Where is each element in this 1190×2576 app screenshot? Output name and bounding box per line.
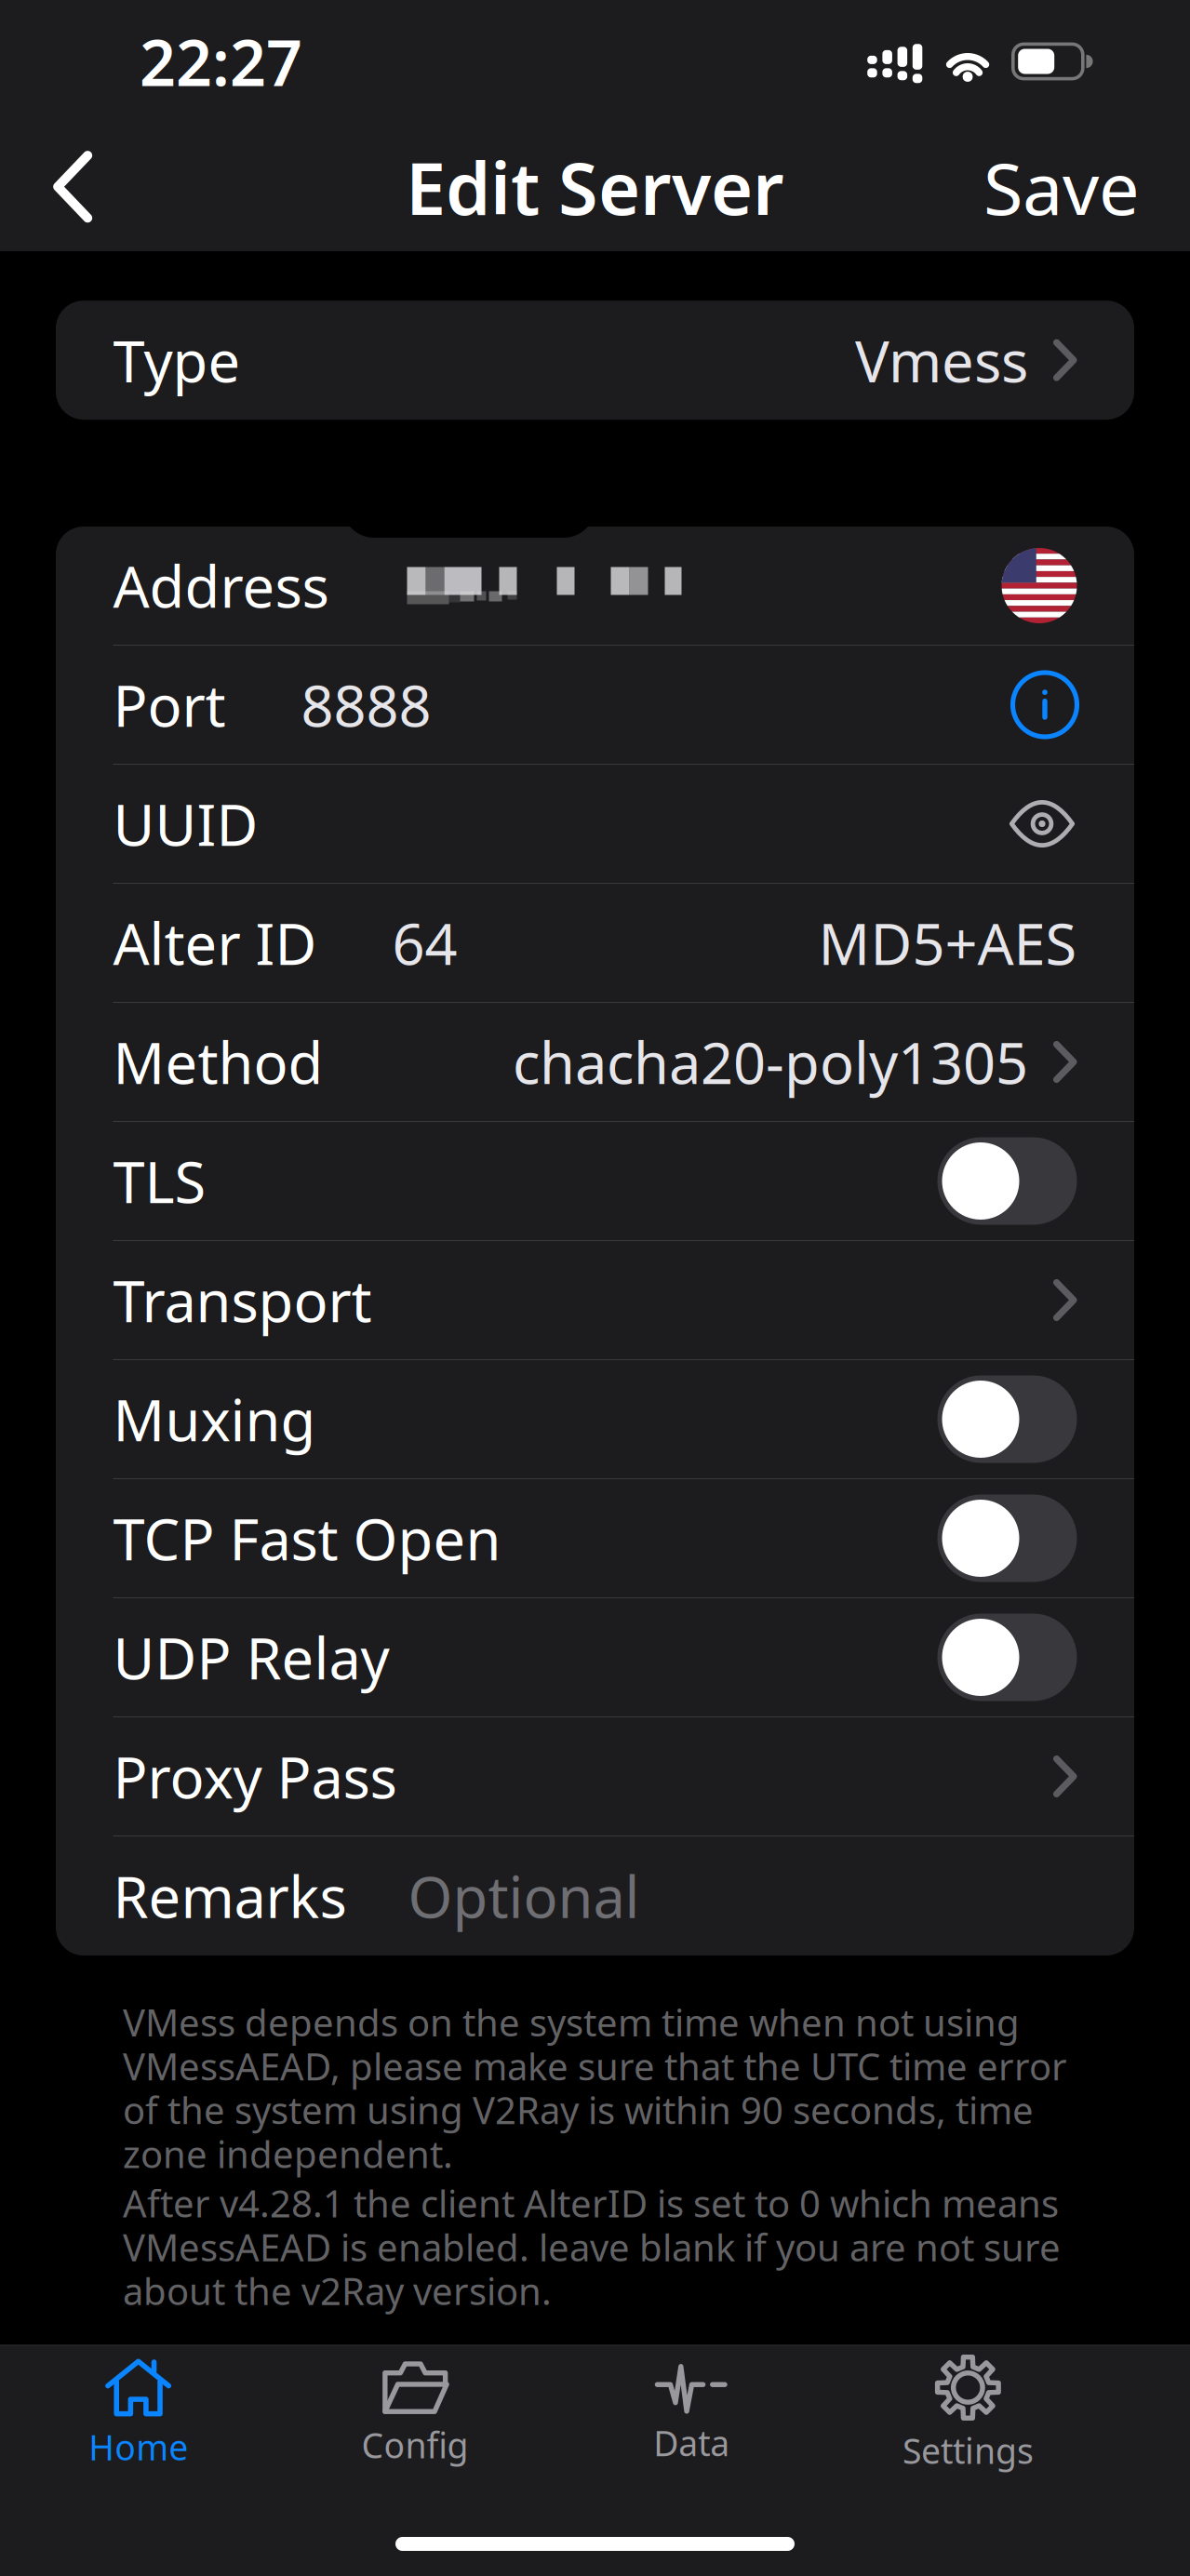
staticText: UDP Relay bbox=[113, 1619, 389, 1695]
staticText: 64 bbox=[392, 905, 457, 981]
button[interactable]: Settings bbox=[830, 2346, 1106, 2483]
staticText: Optional bbox=[408, 1858, 640, 1934]
staticText: 22:27 bbox=[140, 19, 302, 103]
staticText: Save bbox=[983, 139, 1140, 235]
staticText: VMess depends on the system time when no… bbox=[123, 1997, 1067, 2178]
staticText: UUID bbox=[113, 786, 258, 862]
button[interactable]: Data bbox=[553, 2346, 830, 2483]
button[interactable]: Save bbox=[933, 123, 1190, 251]
staticText: MD5+AES bbox=[818, 905, 1077, 981]
staticText: TLS bbox=[113, 1143, 206, 1219]
button[interactable]: Transport bbox=[56, 1241, 1134, 1360]
staticText: Transport bbox=[113, 1262, 372, 1338]
staticText: Port bbox=[113, 667, 226, 743]
button[interactable]: Config bbox=[277, 2346, 553, 2483]
staticText: After v4.28.1 the client AlterID is set … bbox=[123, 2178, 1061, 2315]
staticText: Edit Server bbox=[406, 139, 784, 235]
button[interactable]: Port info bbox=[1013, 673, 1077, 737]
staticText: Alter ID bbox=[113, 905, 317, 981]
staticText: Method bbox=[113, 1024, 323, 1100]
button[interactable]: Type bbox=[56, 301, 1134, 420]
button[interactable]: Back bbox=[0, 123, 131, 251]
staticText: TCP Fast Open bbox=[113, 1500, 501, 1576]
staticText: chacha20-poly1305 bbox=[513, 1024, 1028, 1100]
staticText: Type bbox=[113, 322, 241, 398]
staticText: Vmess bbox=[855, 322, 1028, 398]
staticText: Muxing bbox=[113, 1381, 316, 1457]
button[interactable]: Show UUID bbox=[1007, 804, 1077, 843]
staticText: Config bbox=[361, 2422, 468, 2468]
staticText: Remarks bbox=[113, 1858, 347, 1934]
staticText: Data bbox=[653, 2420, 730, 2466]
staticText: Proxy Pass bbox=[113, 1739, 397, 1814]
button[interactable]: Home bbox=[0, 2346, 277, 2483]
staticText: 8888 bbox=[301, 667, 431, 743]
button[interactable]: Method bbox=[56, 1003, 1134, 1122]
button[interactable]: Proxy Pass bbox=[56, 1717, 1134, 1836]
staticText: Settings bbox=[902, 2427, 1034, 2473]
staticText: Address bbox=[113, 548, 329, 623]
staticText: Home bbox=[88, 2424, 188, 2470]
